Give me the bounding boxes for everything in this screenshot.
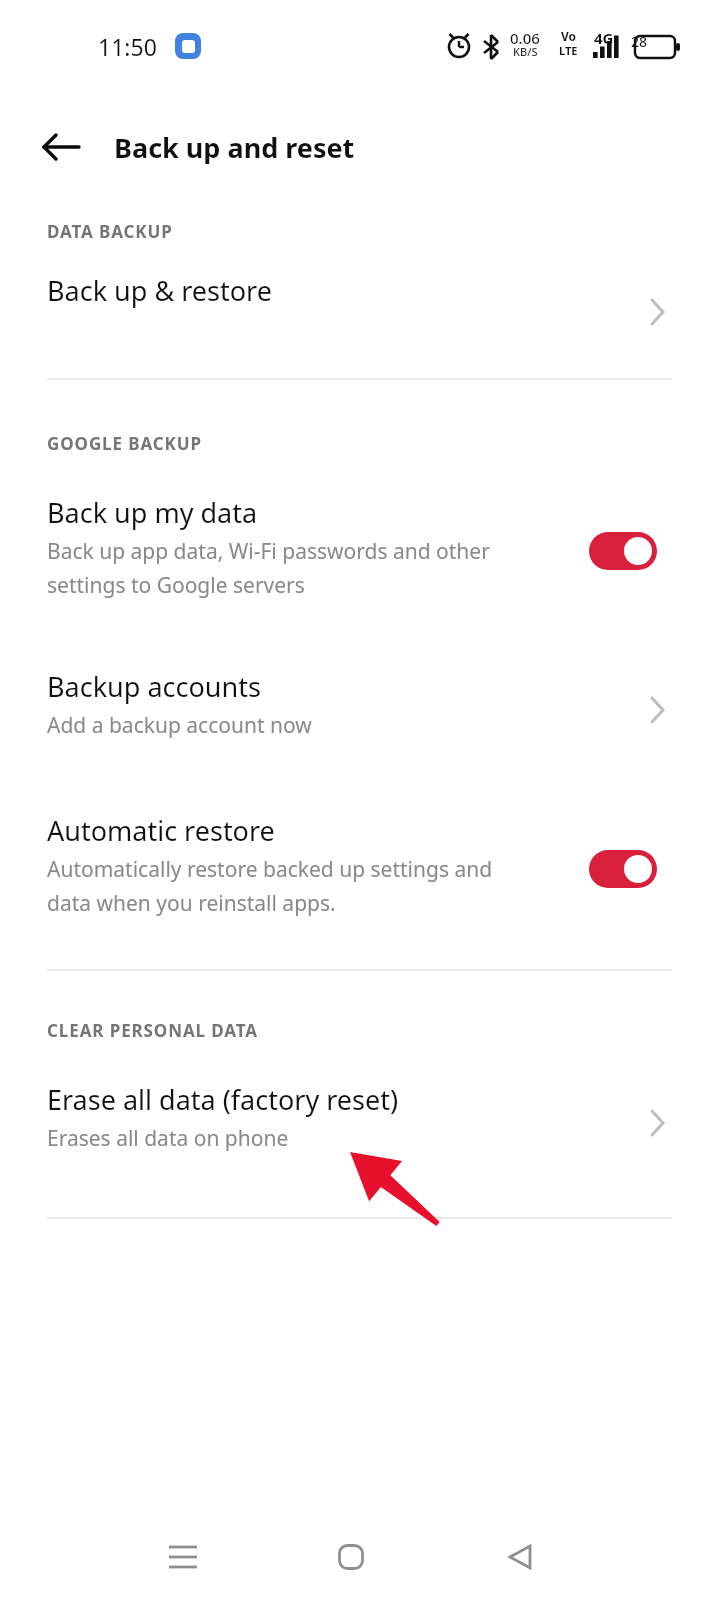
staticText: Vo bbox=[561, 28, 577, 44]
button[interactable]: Toggle on bbox=[589, 850, 657, 888]
button[interactable]: Recent apps bbox=[147, 1521, 219, 1593]
staticText: Back up and reset bbox=[114, 129, 355, 166]
staticText: KB/S bbox=[513, 44, 538, 59]
staticText: Back up app data, Wi-Fi passwords and ot… bbox=[47, 537, 490, 599]
staticText: Back up & restore bbox=[47, 272, 272, 309]
staticText: GOOGLE BACKUP bbox=[47, 432, 202, 455]
staticText: Backup accounts bbox=[47, 668, 261, 705]
staticText: CLEAR PERSONAL DATA bbox=[47, 1019, 258, 1042]
staticText: 0.06 bbox=[510, 28, 540, 48]
staticText: DATA BACKUP bbox=[47, 220, 173, 243]
button[interactable]: Back bbox=[484, 1521, 556, 1593]
staticText: LTE bbox=[559, 43, 578, 58]
staticText: Automatically restore backed up settings… bbox=[47, 855, 493, 917]
button[interactable]: Home bbox=[315, 1521, 387, 1593]
button[interactable]: Backup accounts bbox=[0, 668, 720, 760]
button[interactable]: Erase all data (factory reset) bbox=[0, 1081, 720, 1173]
staticText: Erase all data (factory reset) bbox=[47, 1081, 399, 1118]
button[interactable]: Back up my data bbox=[0, 494, 720, 618]
staticText: 28 bbox=[631, 32, 648, 51]
button[interactable]: Back up & restore bbox=[0, 272, 720, 352]
staticText: Back up my data bbox=[47, 494, 258, 531]
staticText: Erases all data on phone bbox=[47, 1124, 289, 1153]
staticText: 11:50 bbox=[98, 31, 157, 62]
staticText: Add a backup account now bbox=[47, 711, 312, 740]
staticText: 4G bbox=[594, 28, 614, 48]
button[interactable]: Back bbox=[30, 124, 92, 170]
button[interactable]: Automatic restore bbox=[0, 812, 720, 936]
button[interactable]: Toggle on bbox=[589, 532, 657, 570]
staticText: Automatic restore bbox=[47, 812, 275, 849]
